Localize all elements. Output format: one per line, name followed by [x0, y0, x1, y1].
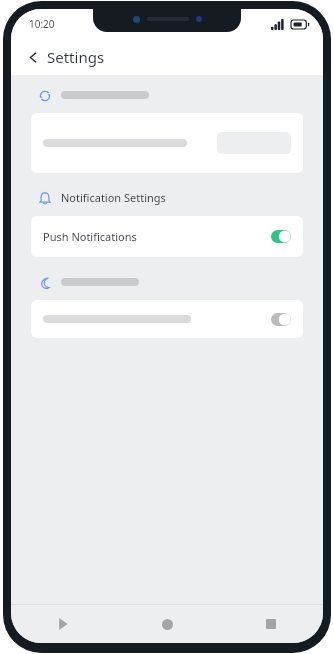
button[interactable]: Recents [219, 605, 323, 643]
button[interactable]: Toggle off [271, 313, 291, 326]
staticText: Notification Settings [61, 190, 166, 205]
button[interactable]: Push Notifications [31, 216, 303, 257]
staticText: Settings [47, 47, 105, 67]
staticText: 10:20 [29, 17, 55, 31]
button[interactable]: Toggle on [271, 230, 291, 243]
button[interactable]: Toggle off [31, 300, 303, 338]
button[interactable]: Back [21, 45, 45, 69]
staticText: Push Notifications [43, 229, 137, 244]
button[interactable]: Home [115, 605, 219, 643]
button[interactable]: Back [11, 605, 115, 643]
